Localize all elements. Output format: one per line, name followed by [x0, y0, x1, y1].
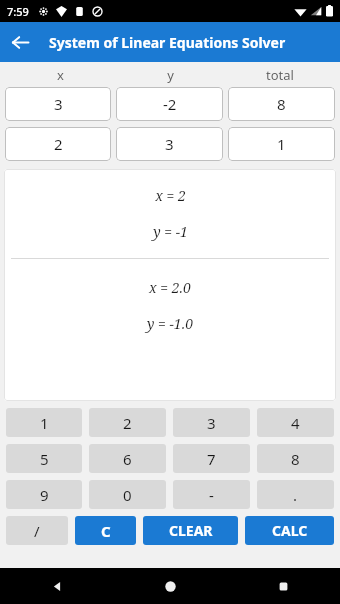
staticText: CALC	[272, 521, 308, 540]
staticText: -2	[163, 94, 177, 114]
staticText: total	[266, 66, 294, 84]
staticText: 3	[165, 134, 174, 154]
button[interactable]: -2	[116, 87, 223, 121]
button[interactable]: 8	[228, 87, 335, 121]
button[interactable]: 2	[5, 127, 111, 161]
staticText: 9	[40, 485, 49, 505]
button[interactable]: 2	[89, 408, 166, 437]
staticText: 7:59	[7, 4, 29, 19]
staticText: x	[57, 66, 64, 84]
staticText: y = −1.0	[147, 314, 193, 333]
button[interactable]: 4	[257, 408, 334, 437]
staticText: 6	[123, 449, 132, 469]
button[interactable]: Home	[114, 568, 227, 604]
button[interactable]: 6	[89, 444, 166, 473]
button[interactable]: 3	[173, 408, 250, 437]
staticText: System of Linear Equations Solver	[49, 33, 286, 52]
staticText: 8	[277, 94, 286, 114]
staticText: 4	[291, 413, 300, 433]
staticText: 5	[40, 449, 49, 469]
button[interactable]: -	[173, 480, 250, 509]
button[interactable]: 8	[257, 444, 334, 473]
button[interactable]: 1	[6, 408, 82, 437]
staticText: 3	[54, 94, 63, 114]
button[interactable]: 1	[228, 127, 335, 161]
staticText: .	[293, 485, 298, 505]
staticText: 3	[207, 413, 216, 433]
button[interactable]: 3	[5, 87, 111, 121]
button[interactable]: 3	[116, 127, 223, 161]
staticText: 7	[207, 449, 216, 469]
button[interactable]: 0	[89, 480, 166, 509]
button[interactable]: Recent apps	[227, 568, 340, 604]
staticText: 2	[54, 134, 63, 154]
staticText: /	[34, 521, 40, 541]
staticText: 0	[123, 485, 132, 505]
button[interactable]: 7	[173, 444, 250, 473]
button[interactable]: CLEAR	[143, 516, 238, 545]
button[interactable]: CALC	[245, 516, 334, 545]
staticText: 1	[277, 134, 286, 154]
staticText: 8	[291, 449, 300, 469]
button[interactable]: Back	[0, 22, 40, 62]
staticText: x = 2.0	[149, 278, 191, 297]
button[interactable]: 5	[6, 444, 82, 473]
staticText: CLEAR	[169, 521, 213, 540]
button[interactable]: Back	[0, 568, 114, 604]
staticText: x = 2	[155, 186, 186, 205]
button[interactable]: 9	[6, 480, 82, 509]
staticText: C	[101, 521, 111, 541]
button[interactable]: C	[75, 516, 136, 545]
staticText: -	[209, 485, 214, 505]
staticText: y	[167, 66, 174, 84]
button[interactable]: /	[6, 516, 68, 545]
staticText: 1	[40, 413, 49, 433]
staticText: y = −1	[153, 222, 188, 241]
button[interactable]: .	[257, 480, 334, 509]
staticText: 2	[123, 413, 132, 433]
